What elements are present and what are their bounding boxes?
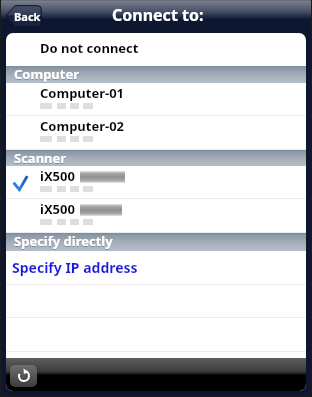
staticText: Computer-01 bbox=[40, 84, 125, 102]
staticText: iX500 bbox=[40, 200, 75, 218]
staticText: Computer bbox=[14, 65, 80, 82]
staticText: Specify directly bbox=[14, 232, 113, 250]
button[interactable]: Refresh bbox=[10, 365, 37, 387]
staticText: Specify IP address bbox=[12, 258, 138, 277]
staticText: Scanner bbox=[14, 149, 67, 165]
button[interactable]: Back bbox=[5, 5, 42, 27]
button[interactable]: Specify IP address bbox=[6, 251, 306, 285]
button[interactable]: Computer-01 bbox=[6, 83, 306, 116]
staticText: Specify directly bbox=[14, 233, 113, 251]
button[interactable]: Computer-02 bbox=[6, 116, 306, 150]
staticText: iX500 bbox=[40, 167, 75, 185]
staticText: Do not connect bbox=[40, 39, 139, 57]
staticText: Computer bbox=[14, 66, 80, 83]
button[interactable]: iX500 bbox=[6, 166, 306, 199]
staticText: Connect to: bbox=[112, 4, 204, 26]
staticText: Scanner bbox=[14, 150, 67, 166]
staticText: Computer-02 bbox=[40, 117, 125, 135]
button[interactable]: iX500 bbox=[6, 199, 306, 233]
button[interactable]: Do not connect bbox=[6, 33, 306, 66]
staticText: Back bbox=[14, 9, 41, 24]
